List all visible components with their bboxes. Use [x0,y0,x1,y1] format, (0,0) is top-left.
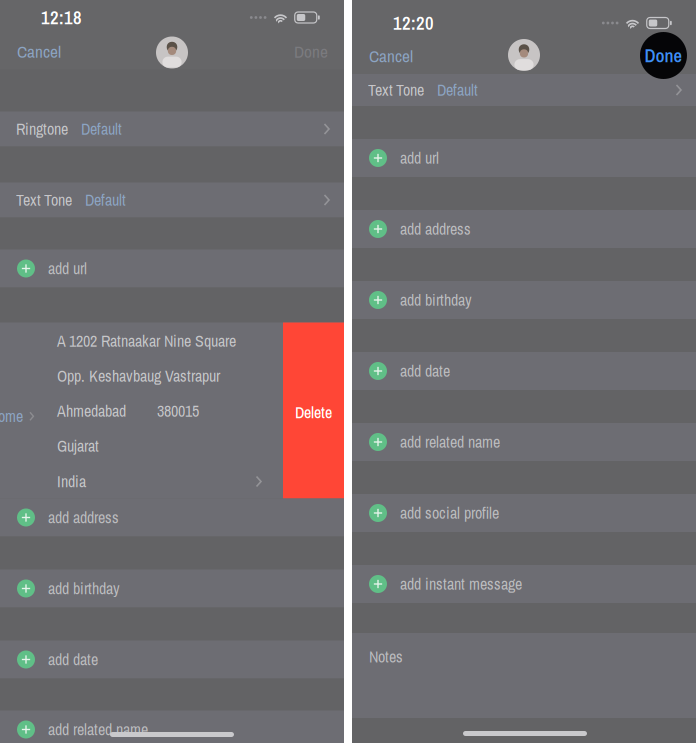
staticText: Gujarat [57,435,99,457]
staticText: Default [81,118,122,140]
button[interactable]: add date [0,640,344,678]
button[interactable]: add instant message [352,565,696,603]
button[interactable]: add url [0,249,344,287]
button[interactable]: add address [352,210,696,248]
staticText: Default [85,189,126,211]
staticText: Text Tone [16,189,72,211]
button[interactable]: Cancel [353,43,429,69]
staticText: Cancel [369,44,413,68]
staticText: add related name [48,719,148,740]
staticText: 12:20 [393,10,434,35]
staticText: add related name [400,431,500,453]
button[interactable]: add birthday [0,569,344,607]
staticText: Default [437,79,478,101]
button[interactable]: add date [352,352,696,390]
staticText: ome [0,405,23,427]
staticText: India [57,471,86,492]
button[interactable]: Done [630,43,696,69]
button[interactable]: add birthday [352,281,696,319]
button[interactable]: Text Tone [0,182,344,217]
button[interactable]: add social profile [352,494,696,532]
staticText: add social profile [400,502,499,524]
staticText: A 1202 Ratnaakar Nine Square [57,330,236,352]
staticText: Ahmedabad [57,400,126,422]
staticText: Done [644,43,682,68]
staticText: add address [48,507,119,528]
staticText: add birthday [48,578,120,599]
button[interactable]: Delete [283,322,344,498]
button[interactable]: Ringtone [0,111,344,146]
button[interactable]: add related name [0,710,344,743]
button[interactable]: add address [0,498,344,536]
staticText: add birthday [400,289,472,311]
staticText: 380015 [157,400,199,422]
staticText: add instant message [400,573,522,595]
staticText: Cancel [17,40,61,63]
staticText: Done [294,40,328,63]
button[interactable]: Done [278,38,344,64]
staticText: add url [48,258,87,279]
staticText: 12:18 [41,5,82,30]
staticText: Opp. Keshavbaug Vastrapur [57,365,220,387]
button[interactable]: Cancel [1,38,77,64]
staticText: Notes [369,646,403,668]
button[interactable]: add url [352,139,696,177]
button[interactable]: Done [639,32,688,79]
button[interactable]: Text Tone [352,74,696,106]
staticText: Delete [295,402,332,423]
staticText: Done [646,44,680,68]
staticText: Text Tone [368,79,424,101]
staticText: add date [48,649,98,670]
staticText: add date [400,360,450,382]
button[interactable]: add related name [352,423,696,461]
staticText: Ringtone [16,118,68,140]
staticText: add url [400,147,439,169]
staticText: add address [400,218,471,240]
